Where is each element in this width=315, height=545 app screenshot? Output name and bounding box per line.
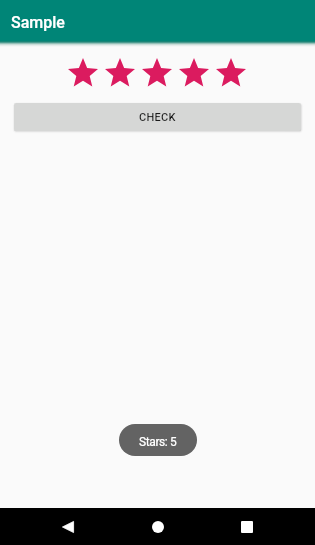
staticText: Sample (11, 13, 65, 32)
staticText: CHECK (139, 111, 176, 124)
button[interactable]: Rate 2 stars (105, 57, 142, 87)
staticText: Stars: 5 (139, 435, 177, 449)
button[interactable]: Back (46, 508, 90, 545)
button[interactable]: Home (136, 508, 180, 545)
button[interactable]: CHECK (14, 103, 301, 131)
button[interactable]: Rate 3 stars (142, 57, 179, 87)
button[interactable]: Recent apps (225, 508, 269, 545)
button[interactable]: Rate 4 stars (179, 57, 216, 87)
button[interactable]: Rate 5 stars (216, 57, 253, 87)
button[interactable]: Rate 1 stars (68, 57, 105, 87)
